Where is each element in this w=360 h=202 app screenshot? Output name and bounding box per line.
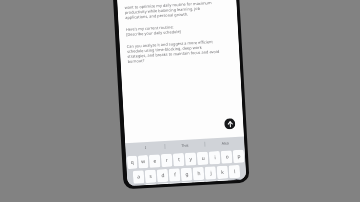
button[interactable]: Also bbox=[205, 137, 245, 150]
staticText: n bbox=[209, 180, 213, 181]
staticText: p bbox=[237, 153, 241, 160]
staticText: schedule using time-blocking, deep work bbox=[127, 45, 202, 54]
staticText: [Describe your daily schedule] bbox=[126, 29, 181, 37]
button[interactable]: b bbox=[193, 181, 204, 182]
button[interactable]: l bbox=[229, 165, 240, 178]
staticText: v bbox=[185, 182, 188, 183]
staticText: k bbox=[221, 169, 224, 176]
staticText: r bbox=[165, 157, 168, 164]
staticText: y bbox=[189, 155, 192, 163]
staticText: burnout? bbox=[127, 58, 145, 64]
staticText: Can you analyze it and suggest a more ef… bbox=[127, 39, 214, 49]
staticText: i bbox=[214, 154, 216, 161]
button[interactable]: w bbox=[138, 155, 149, 168]
staticText: f bbox=[174, 171, 176, 178]
button[interactable]: e bbox=[149, 154, 161, 168]
button[interactable]: k bbox=[217, 165, 228, 179]
button[interactable]: I bbox=[125, 141, 165, 154]
button[interactable]: r bbox=[161, 154, 172, 167]
staticText: a bbox=[137, 173, 140, 181]
button[interactable]: d bbox=[157, 169, 168, 182]
button[interactable]: f bbox=[169, 168, 180, 182]
staticText: q bbox=[130, 159, 134, 166]
staticText: w bbox=[141, 158, 145, 165]
staticText: I bbox=[144, 145, 147, 150]
button[interactable]: This bbox=[165, 139, 205, 152]
staticText: applications, and personal growth. bbox=[125, 11, 189, 20]
staticText: This bbox=[181, 143, 188, 148]
staticText: u bbox=[201, 155, 205, 162]
button[interactable]: q bbox=[127, 156, 138, 169]
button[interactable]: Backspace bbox=[229, 179, 245, 180]
button[interactable]: n bbox=[205, 180, 216, 182]
staticText: Here's my current routine: bbox=[126, 24, 174, 32]
button[interactable]: v bbox=[181, 181, 192, 183]
staticText: d bbox=[161, 172, 165, 179]
staticText: e bbox=[153, 157, 156, 165]
button[interactable]: x bbox=[157, 183, 168, 184]
button[interactable]: m bbox=[217, 179, 228, 181]
staticText: h bbox=[197, 170, 201, 177]
staticText: c bbox=[173, 182, 176, 184]
button[interactable]: p bbox=[233, 150, 244, 163]
button[interactable]: c bbox=[169, 182, 180, 184]
staticText: z bbox=[149, 184, 153, 185]
button[interactable]: y bbox=[185, 152, 196, 166]
staticText: want to optimize my daily routine for ma… bbox=[124, 0, 212, 10]
staticText: j bbox=[210, 169, 212, 176]
button[interactable]: u bbox=[197, 152, 208, 165]
button[interactable]: a bbox=[133, 170, 144, 184]
button[interactable]: Send message bbox=[224, 118, 235, 130]
staticText: productivity while balancing learning, j… bbox=[125, 6, 201, 15]
button[interactable]: h bbox=[193, 167, 204, 180]
button[interactable]: g bbox=[181, 167, 192, 181]
button[interactable]: i bbox=[209, 151, 220, 164]
staticText: t bbox=[178, 156, 180, 163]
staticText: s bbox=[149, 173, 152, 180]
button[interactable]: s bbox=[145, 169, 156, 183]
button[interactable]: Shift bbox=[128, 184, 144, 186]
staticText: Also bbox=[221, 140, 229, 146]
button[interactable]: o bbox=[221, 150, 232, 164]
staticText: g bbox=[185, 171, 189, 178]
staticText: m bbox=[220, 180, 225, 181]
button[interactable]: j bbox=[205, 166, 216, 180]
button[interactable]: z bbox=[145, 183, 156, 185]
button[interactable]: t bbox=[173, 153, 184, 166]
staticText: b bbox=[197, 181, 201, 182]
staticText: strategies, and breaks to maintain focus… bbox=[127, 49, 220, 59]
staticText: l bbox=[234, 168, 236, 175]
staticText: o bbox=[225, 153, 229, 161]
